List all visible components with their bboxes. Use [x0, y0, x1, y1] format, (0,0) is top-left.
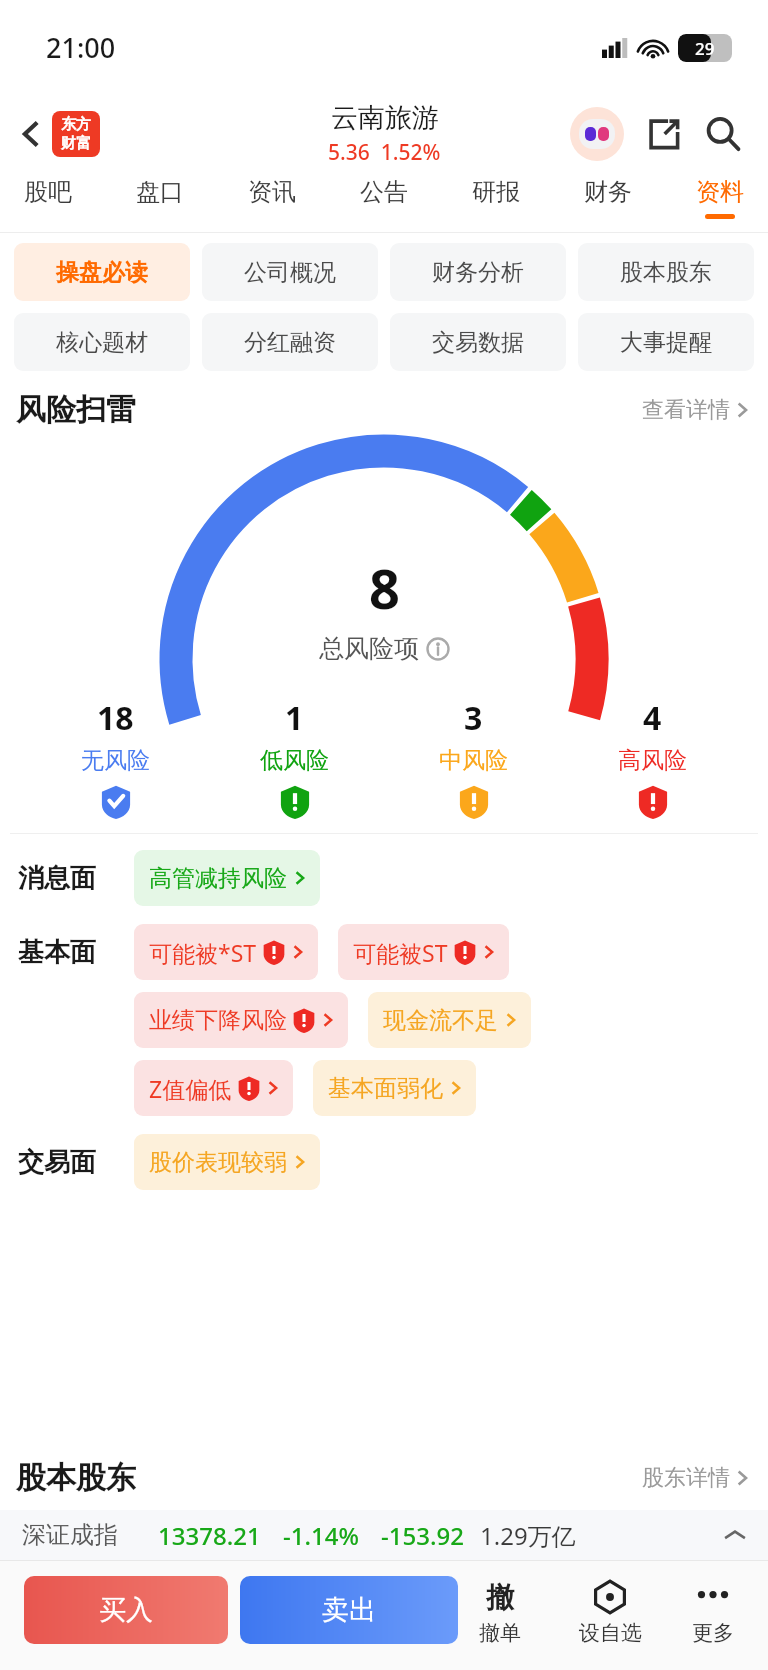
- staticText: 股吧: [24, 177, 72, 207]
- button[interactable]: 股本股东: [578, 243, 754, 301]
- staticText: 中风险: [439, 746, 508, 775]
- button[interactable]: 公告: [350, 173, 418, 223]
- staticText: 高风险: [618, 746, 687, 775]
- staticText: 公告: [360, 177, 408, 207]
- staticText: 核心题材: [56, 328, 148, 357]
- staticText: 交易数据: [432, 328, 524, 357]
- button[interactable]: 操盘必读: [14, 243, 190, 301]
- button[interactable]: 深证成指: [0, 1510, 768, 1560]
- button[interactable]: 业绩下降风险: [134, 992, 348, 1048]
- button[interactable]: 18: [26, 696, 205, 819]
- button[interactable]: 分享: [642, 112, 686, 156]
- button[interactable]: 返回: [14, 109, 48, 159]
- button[interactable]: 设自选: [568, 1576, 652, 1648]
- button[interactable]: 公司概况: [202, 243, 378, 301]
- staticText: 设自选: [579, 1620, 642, 1646]
- staticText: 财务分析: [432, 258, 524, 287]
- staticText: 盘口: [136, 177, 184, 207]
- button[interactable]: 股东详情: [638, 1460, 752, 1496]
- staticText: 大事提醒: [620, 328, 712, 357]
- staticText: 云南旅游: [331, 101, 439, 135]
- button[interactable]: 3: [384, 696, 563, 819]
- button[interactable]: 买入: [24, 1576, 228, 1644]
- staticText: 买入: [99, 1593, 153, 1627]
- staticText: 股本股东: [620, 258, 712, 287]
- staticText: 更多: [692, 1620, 734, 1646]
- staticText: 29: [695, 37, 715, 60]
- staticText: 1.29万亿: [480, 1519, 576, 1552]
- staticText: 可能被ST: [353, 937, 448, 968]
- button[interactable]: 高管减持风险: [134, 850, 320, 906]
- button[interactable]: 卖出: [240, 1576, 458, 1644]
- staticText: 基本面弱化: [328, 1074, 443, 1103]
- staticText: 公司概况: [244, 258, 336, 287]
- staticText: 1: [285, 696, 304, 740]
- staticText: 股东详情: [642, 1464, 730, 1492]
- staticText: 卖出: [322, 1593, 376, 1627]
- button[interactable]: 研报: [462, 173, 530, 223]
- button[interactable]: 1: [205, 696, 384, 819]
- staticText: 可能被*ST: [149, 937, 257, 968]
- button[interactable]: 基本面弱化: [313, 1060, 476, 1116]
- button[interactable]: 查看详情: [638, 392, 752, 428]
- staticText: 交易面: [18, 1146, 96, 1179]
- staticText: 无风险: [81, 746, 150, 775]
- button[interactable]: 财务: [574, 173, 642, 223]
- staticText: 东方: [61, 115, 91, 134]
- staticText: 分红融资: [244, 328, 336, 357]
- button[interactable]: 现金流不足: [368, 992, 531, 1048]
- button[interactable]: 分红融资: [202, 313, 378, 371]
- staticText: 资讯: [248, 177, 296, 207]
- staticText: 撤单: [479, 1620, 521, 1646]
- staticText: 财富: [61, 134, 91, 153]
- staticText: 总风险项: [319, 633, 419, 664]
- staticText: -153.92: [381, 1519, 464, 1552]
- button[interactable]: 搜索: [700, 111, 746, 157]
- button[interactable]: 撤: [458, 1576, 542, 1648]
- staticText: 高管减持风险: [149, 864, 287, 893]
- button[interactable]: 资料: [686, 173, 754, 223]
- button[interactable]: 可能被ST: [338, 924, 509, 980]
- staticText: 风险扫雷: [16, 391, 136, 429]
- button[interactable]: 助手: [570, 107, 624, 161]
- staticText: 基本面: [18, 936, 96, 969]
- button[interactable]: 大事提醒: [578, 313, 754, 371]
- button[interactable]: 可能被*ST: [134, 924, 318, 980]
- button[interactable]: 股价表现较弱: [134, 1134, 320, 1190]
- staticText: 18: [97, 696, 134, 740]
- staticText: 低风险: [260, 746, 329, 775]
- button[interactable]: Z值偏低: [134, 1060, 293, 1116]
- button[interactable]: 盘口: [126, 173, 194, 223]
- staticText: 现金流不足: [383, 1006, 498, 1035]
- button[interactable]: 财务分析: [390, 243, 566, 301]
- button[interactable]: 4: [563, 696, 742, 819]
- staticText: 13378.21: [158, 1519, 261, 1552]
- button[interactable]: 交易数据: [390, 313, 566, 371]
- button[interactable]: 更多: [678, 1576, 748, 1648]
- staticText: 8: [369, 551, 400, 625]
- staticText: 股价表现较弱: [149, 1148, 287, 1177]
- staticText: 消息面: [18, 862, 96, 895]
- staticText: 深证成指: [22, 1520, 118, 1550]
- staticText: 21:00: [46, 29, 116, 66]
- staticText: 研报: [472, 177, 520, 207]
- staticText: 查看详情: [642, 396, 730, 424]
- staticText: 操盘必读: [56, 258, 148, 287]
- button[interactable]: 资讯: [238, 173, 306, 223]
- staticText: 财务: [584, 177, 632, 207]
- staticText: 资料: [696, 177, 744, 207]
- button[interactable]: 股吧: [14, 173, 82, 223]
- staticText: 股本股东: [16, 1459, 136, 1497]
- button[interactable]: 东方: [52, 111, 100, 157]
- staticText: 4: [643, 696, 662, 740]
- staticText: 3: [464, 696, 483, 740]
- staticText: -1.14%: [283, 1519, 359, 1552]
- button[interactable]: 核心题材: [14, 313, 190, 371]
- staticText: Z值偏低: [149, 1073, 232, 1104]
- staticText: 撤: [486, 1580, 514, 1615]
- staticText: 5.36 1.52%: [328, 138, 441, 167]
- staticText: 业绩下降风险: [149, 1006, 287, 1035]
